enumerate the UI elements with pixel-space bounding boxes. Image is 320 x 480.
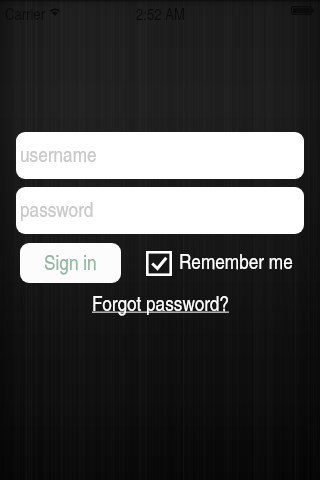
staticText: Remember me [179, 246, 293, 275]
staticText: 2:52 AM [136, 3, 185, 23]
button[interactable]: Sign in [20, 243, 121, 283]
staticText: Carrier [5, 3, 46, 23]
button[interactable]: username [16, 132, 304, 179]
button[interactable]: password [16, 187, 304, 234]
button[interactable]: Remember me checkbox [146, 245, 293, 279]
other: Remember me checkbox [146, 251, 172, 276]
staticText: password [20, 194, 94, 223]
staticText: Sign in [44, 247, 97, 276]
other: Battery [291, 6, 314, 15]
other: Wi-Fi signal [49, 6, 61, 16]
staticText: username [20, 139, 97, 168]
button[interactable]: Forgot password? [92, 288, 229, 317]
